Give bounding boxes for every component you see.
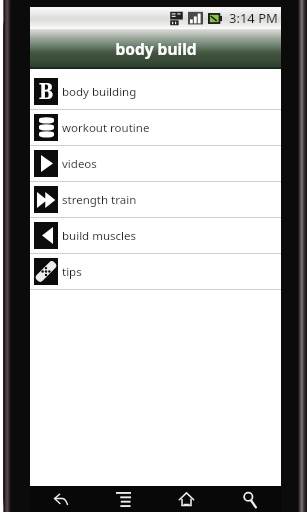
button[interactable]: videos [30,146,281,181]
button[interactable]: tips [30,254,281,289]
staticText: body build [115,38,197,59]
button[interactable]: Search [218,486,281,512]
staticText: strength train [62,192,137,208]
button[interactable]: Menu [92,486,155,512]
staticText: workout routine [62,120,150,136]
button[interactable]: B [30,74,281,109]
staticText: 3:14 PM [229,9,278,27]
button[interactable]: workout routine [30,110,281,145]
staticText: build muscles [62,228,137,244]
button[interactable]: strength train [30,182,281,217]
staticText: tips [62,264,82,280]
button[interactable]: Back [30,486,92,512]
button[interactable]: build muscles [30,218,281,253]
staticText: body building [62,84,137,100]
staticText: B [39,77,54,104]
staticText: videos [62,156,97,172]
button[interactable]: Home [155,486,218,512]
